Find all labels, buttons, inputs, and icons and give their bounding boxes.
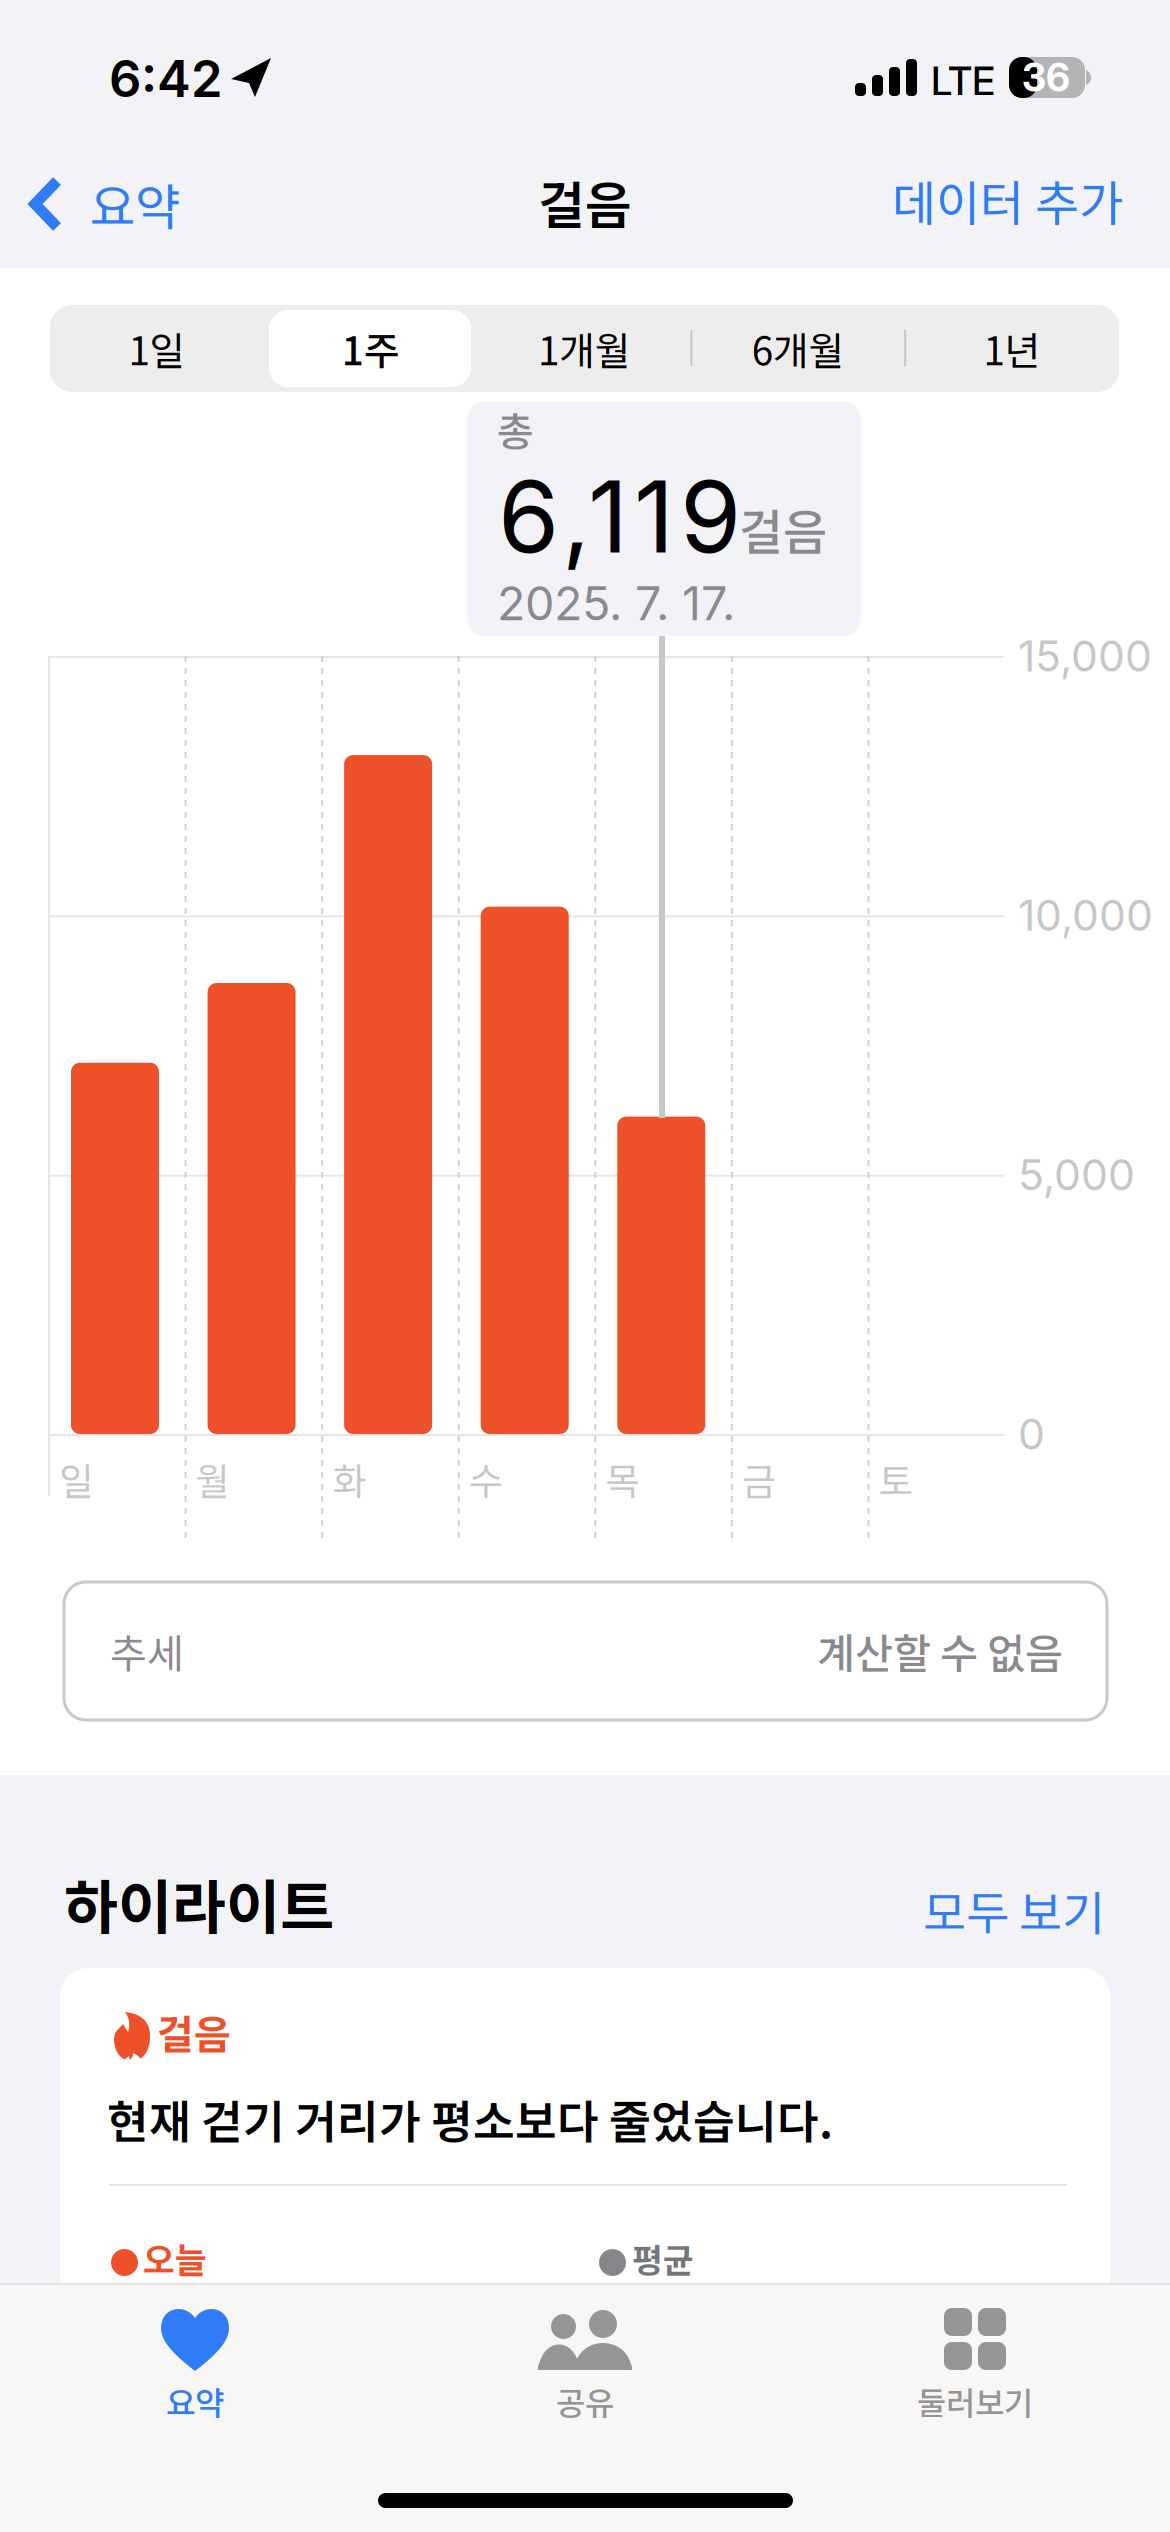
staticText: 36 [1022, 54, 1070, 101]
staticText: 6:42 [109, 48, 223, 109]
staticText: 2025. 7. 17. [497, 575, 735, 631]
staticText: 1일 [128, 320, 185, 376]
staticText: 요약 [166, 2378, 224, 2424]
button[interactable]: 6개월 [691, 305, 905, 392]
staticText: 하이라이트 [64, 1861, 334, 1946]
button[interactable]: 1년 [905, 305, 1119, 392]
button[interactable]: 모두 보기 [885, 1877, 1105, 1943]
staticText: 평균 [632, 2234, 694, 2282]
staticText: 데이터 추가 [892, 165, 1123, 235]
staticText: 금 [742, 1452, 776, 1506]
button[interactable]: 둘러보기 [780, 2307, 1170, 2435]
staticText: 화 [332, 1452, 366, 1506]
staticText: 요약 [90, 168, 180, 239]
staticText: 일 [59, 1452, 93, 1506]
staticText: 걸음 [157, 2003, 231, 2061]
staticText: 오늘 [143, 2233, 207, 2283]
staticText: 10,000 [1018, 889, 1153, 941]
staticText: 총 [497, 400, 534, 458]
staticText: LTE [931, 58, 995, 105]
staticText: 5,000 [1018, 1149, 1135, 1200]
staticText: 걸음 [538, 165, 632, 239]
staticText: 0 [1018, 1408, 1045, 1460]
staticText: 토 [878, 1452, 912, 1506]
staticText: 모두 보기 [923, 1876, 1105, 1944]
staticText: 계산할 수 없음 [817, 1621, 1063, 1681]
staticText: 추세 [110, 1622, 184, 1680]
staticText: 월 [196, 1452, 230, 1506]
staticText: 공유 [556, 2378, 614, 2424]
button[interactable]: 요약 [0, 2307, 390, 2435]
staticText: 현재 걷기 거리가 평소보다 줄었습니다. [107, 2086, 833, 2152]
button[interactable]: 1개월 [478, 305, 691, 392]
staticText: 둘러보기 [917, 2378, 1033, 2424]
staticText: 6,119 [498, 457, 741, 576]
button[interactable]: 공유 [390, 2307, 780, 2435]
staticText: 1년 [984, 320, 1041, 376]
button[interactable]: 추세 [64, 1582, 1107, 1720]
staticText: 1개월 [538, 320, 631, 376]
button[interactable]: 요약 [0, 148, 175, 258]
button[interactable]: 데이터 추가 [857, 145, 1123, 255]
staticText: 목 [605, 1452, 639, 1506]
button[interactable]: 1일 [50, 305, 264, 392]
staticText: 15,000 [1018, 630, 1152, 682]
staticText: 6개월 [752, 320, 845, 376]
button[interactable]: 1주 [264, 305, 478, 392]
staticText: 수 [469, 1452, 503, 1506]
staticText: 걸음 [739, 494, 827, 563]
staticText: 1주 [342, 320, 400, 376]
